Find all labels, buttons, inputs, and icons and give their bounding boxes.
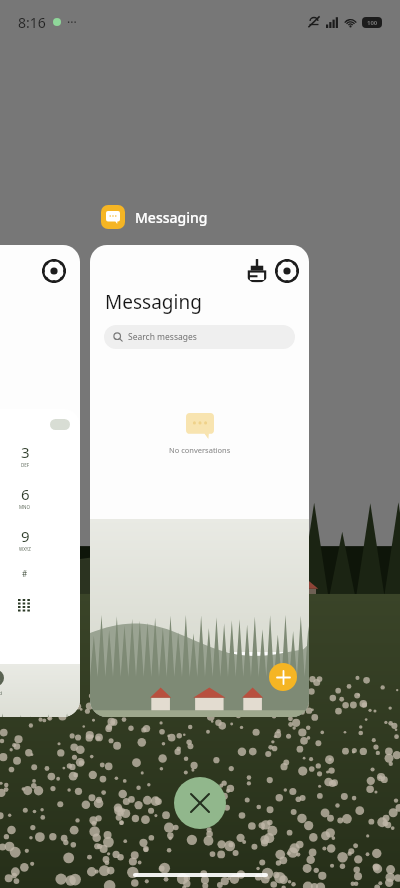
staticText: Dexi: [0, 689, 3, 697]
staticText: Messaging: [135, 208, 208, 227]
button[interactable]: New conversation: [269, 663, 297, 691]
staticText: ···: [67, 14, 77, 30]
button[interactable]: Clean up: [90, 245, 309, 717]
staticText: 8:16: [18, 13, 46, 32]
button[interactable]: 9: [19, 526, 31, 552]
button[interactable]: Close all: [174, 777, 226, 829]
staticText: 100: [367, 19, 378, 27]
button[interactable]: 6: [19, 484, 31, 510]
staticText: Search messages: [128, 331, 197, 343]
button[interactable]: Settings: [275, 259, 299, 283]
staticText: No conversations: [169, 445, 231, 455]
staticText: MNO: [19, 504, 31, 510]
button[interactable]: Settings: [42, 259, 66, 283]
staticText: 3: [21, 442, 30, 462]
button[interactable]: Clean up: [245, 259, 269, 283]
staticText: 9: [21, 526, 30, 546]
staticText: Messaging: [105, 289, 202, 315]
button[interactable]: Backspace: [50, 419, 70, 430]
button[interactable]: Settings: [0, 245, 80, 717]
button[interactable]: [18, 599, 32, 613]
staticText: WXYZ: [19, 546, 31, 552]
button[interactable]: Search messages: [104, 325, 295, 349]
staticText: DEF: [21, 462, 30, 468]
staticText: 6: [21, 484, 30, 504]
button[interactable]: 3: [21, 442, 30, 468]
button[interactable]: #: [22, 568, 28, 579]
